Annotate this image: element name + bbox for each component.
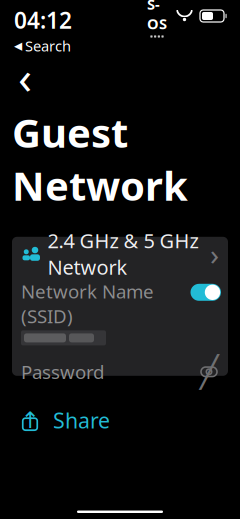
button[interactable]: Back (0, 64, 40, 90)
button[interactable]: 2.4 GHz & 5 GHz Network (12, 237, 228, 271)
staticText: ↑ (20, 407, 39, 433)
staticText: Share (53, 406, 110, 434)
staticText: Guest Network (12, 106, 188, 212)
button[interactable]: Guest network, on (190, 279, 221, 301)
staticText: Network Name (SSID) (21, 279, 154, 328)
button[interactable]: ↑ (12, 406, 110, 434)
staticText: 2.4 GHz & 5 GHz Network (47, 227, 198, 280)
staticText: ‹ (18, 46, 32, 107)
staticText: SOS (147, 0, 167, 33)
staticText: 04:12 (14, 5, 72, 35)
button[interactable]: Show password (199, 362, 219, 382)
staticText: Search (25, 36, 71, 56)
staticText: › (210, 234, 219, 273)
staticText: Password (21, 359, 104, 384)
staticText: ╱ (200, 354, 218, 389)
staticText: ◀ (14, 40, 22, 52)
